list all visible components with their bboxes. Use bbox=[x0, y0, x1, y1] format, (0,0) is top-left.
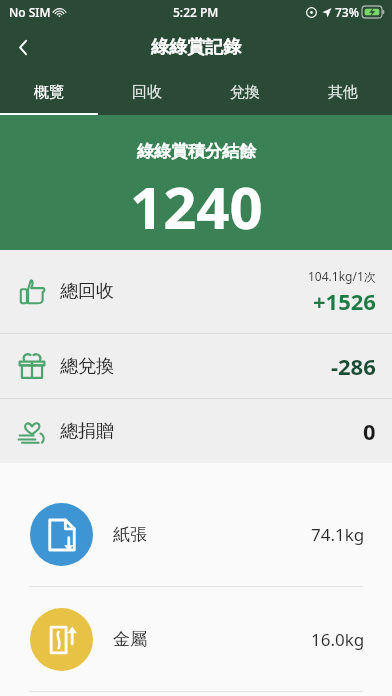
staticText: 其他 bbox=[328, 83, 358, 102]
staticText: 概覽 bbox=[34, 83, 64, 102]
button[interactable]: 概覽 bbox=[0, 70, 98, 115]
staticText: -286 bbox=[331, 351, 376, 381]
staticText: 綠綠賞記錄 bbox=[151, 36, 241, 59]
staticText: 5:22 PM bbox=[173, 4, 219, 20]
staticText: 16.0kg bbox=[311, 628, 365, 651]
staticText: 1240 bbox=[130, 167, 263, 246]
button[interactable]: 金屬 bbox=[0, 587, 392, 691]
button[interactable]: 回收 bbox=[98, 70, 196, 115]
staticText: No SIM bbox=[9, 4, 51, 20]
button[interactable]: 紙張 bbox=[0, 482, 392, 586]
staticText: 總回收 bbox=[60, 280, 114, 303]
staticText: 73% bbox=[335, 4, 359, 20]
staticText: 0 bbox=[363, 416, 376, 446]
staticText: 綠綠賞積分結餘 bbox=[137, 141, 256, 162]
staticText: 總兌換 bbox=[60, 355, 114, 378]
button[interactable]: 總回收 bbox=[0, 250, 392, 333]
staticText: 104.1kg/1次 bbox=[308, 268, 376, 284]
staticText: 74.1kg bbox=[311, 523, 365, 546]
staticText: 回收 bbox=[132, 83, 162, 102]
button[interactable]: 兌換 bbox=[196, 70, 294, 115]
button[interactable]: Back bbox=[0, 24, 46, 70]
staticText: 總捐贈 bbox=[60, 420, 114, 443]
button[interactable]: 其他 bbox=[294, 70, 392, 115]
staticText: 紙張 bbox=[113, 524, 147, 545]
staticText: +1526 bbox=[313, 286, 376, 316]
staticText: 兌換 bbox=[230, 83, 260, 102]
staticText: 金屬 bbox=[113, 629, 147, 650]
button[interactable]: 總兌換 bbox=[0, 334, 392, 398]
button[interactable]: 總捐贈 bbox=[0, 399, 392, 463]
